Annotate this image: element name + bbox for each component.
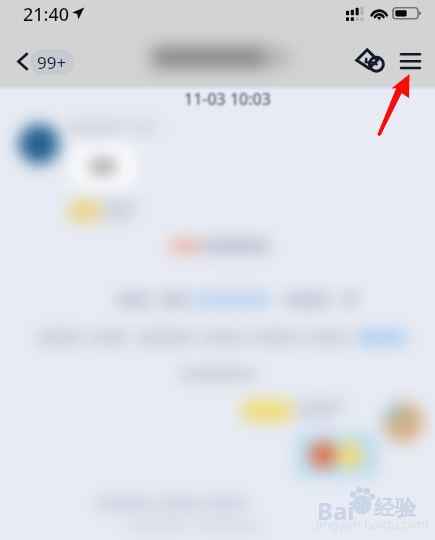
staticText: Bai — [317, 494, 355, 527]
button[interactable]: Label — [347, 37, 387, 81]
staticText: 11-03 10:03 — [184, 88, 271, 110]
staticText: 经验 — [374, 495, 416, 521]
staticText: du — [354, 497, 372, 516]
button[interactable]: Back — [12, 38, 30, 80]
staticText: 21:40 — [23, 2, 70, 27]
staticText: jingyan.baidu.com — [316, 515, 429, 533]
button[interactable]: 99+ — [30, 49, 74, 75]
button[interactable]: Menu — [391, 37, 427, 81]
staticText: 99+ — [37, 51, 67, 74]
